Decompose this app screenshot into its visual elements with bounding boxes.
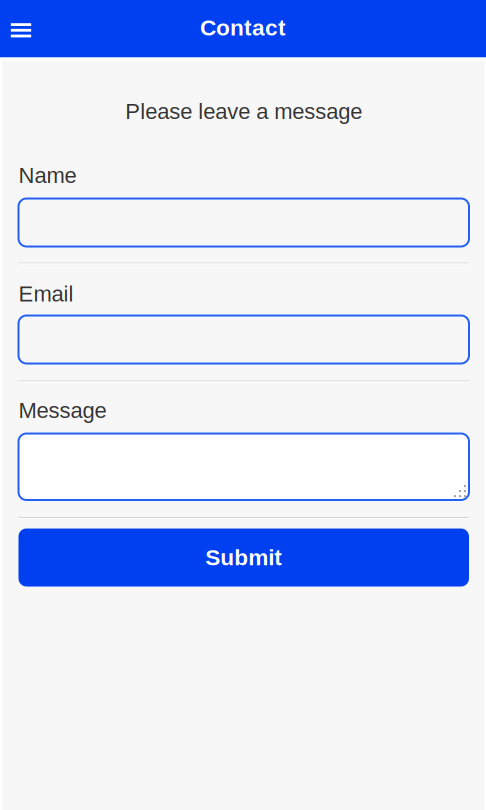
staticText: Please leave a message	[125, 99, 362, 124]
button[interactable]: Submit	[18, 528, 469, 586]
staticText: Message	[18, 398, 106, 423]
button[interactable]: Menu	[0, 0, 45, 57]
staticText: Contact	[200, 15, 286, 40]
staticText: Email	[18, 281, 73, 306]
button[interactable]: Name	[18, 198, 469, 246]
button[interactable]: Message	[18, 433, 469, 500]
button[interactable]: Email	[18, 315, 469, 363]
staticText: Submit	[205, 545, 282, 570]
staticText: Name	[18, 163, 76, 188]
